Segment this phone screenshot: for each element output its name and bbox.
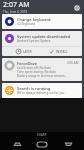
staticText: INSTALL bbox=[56, 50, 68, 54]
button[interactable]: INSTALL bbox=[45, 47, 72, 56]
button[interactable]: ForceDoze bbox=[2, 58, 82, 81]
button[interactable]: Settings bbox=[72, 3, 81, 12]
staticText: Thu, June 4, 2018 bbox=[3, 10, 28, 14]
staticText: Change keyboard bbox=[17, 17, 51, 22]
staticText: Battery usage in last hour session: No d… bbox=[17, 74, 67, 78]
staticText: LG Keyboard bbox=[17, 22, 35, 26]
staticText: 2:07 AM bbox=[3, 0, 30, 10]
staticText: 2:06 AM bbox=[67, 61, 79, 65]
staticText: Time spent dozing: No data bbox=[17, 70, 56, 74]
button[interactable]: Back bbox=[9, 138, 25, 150]
staticText: SHARP bbox=[37, 133, 47, 137]
staticText: Search is running bbox=[17, 86, 51, 91]
staticText: LATER bbox=[23, 50, 32, 54]
button[interactable]: Search is running bbox=[2, 83, 82, 98]
staticText: System update downloaded bbox=[17, 34, 71, 39]
staticText: ForceDoze bbox=[17, 61, 37, 66]
button[interactable]: System update downloaded bbox=[2, 31, 82, 46]
staticText: Last Screen-off: No data bbox=[17, 66, 51, 70]
button[interactable]: Home bbox=[33, 138, 51, 150]
button[interactable]: Recent apps bbox=[60, 138, 76, 150]
staticText: We're always indexing out for you bbox=[17, 91, 65, 95]
staticText: Android System Update bbox=[17, 39, 51, 43]
button[interactable]: Change keyboard bbox=[2, 14, 82, 29]
button[interactable]: LATER bbox=[12, 47, 36, 56]
